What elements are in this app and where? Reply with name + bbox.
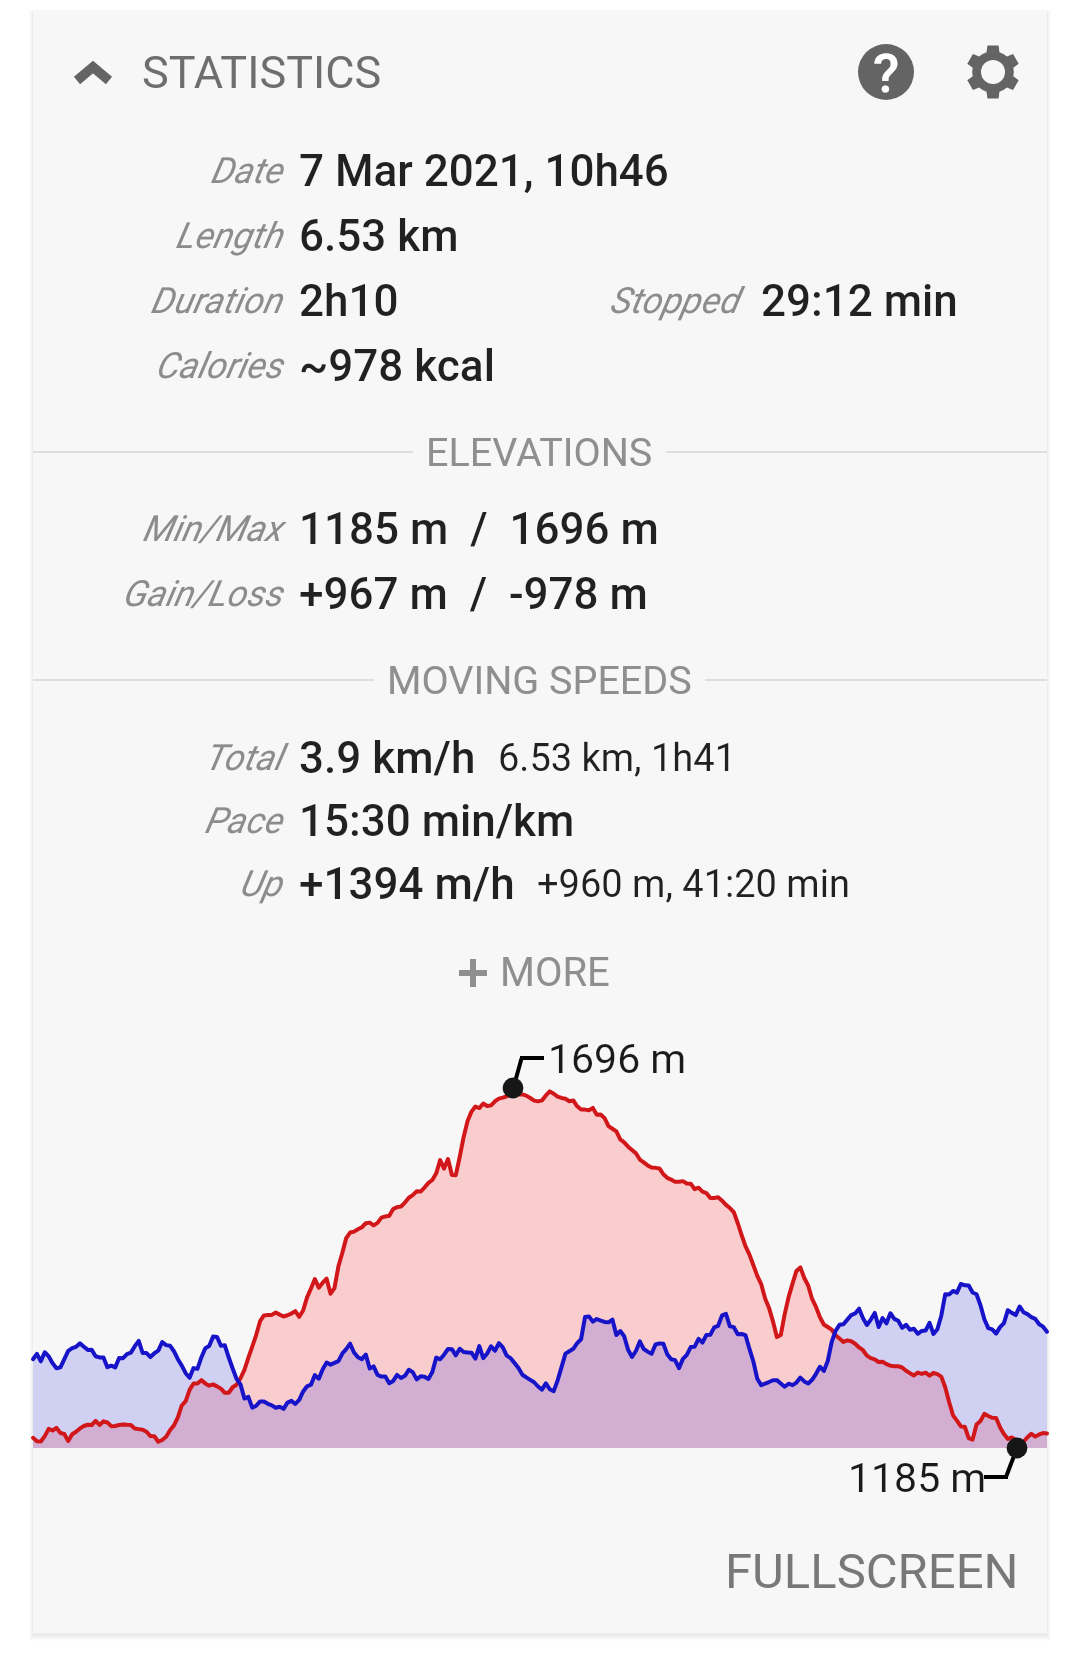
- staticText: MOVING SPEEDS: [387, 657, 692, 703]
- staticText: ?: [873, 42, 900, 98]
- staticText: 1696 m: [548, 1035, 687, 1083]
- button[interactable]: Help: [834, 20, 937, 123]
- staticText: Length: [175, 215, 282, 257]
- staticText: 7 Mar 2021, 10h46: [299, 145, 669, 197]
- staticText: Stopped: [609, 280, 739, 322]
- staticText: Total: [204, 737, 282, 779]
- staticText: 2h10: [299, 275, 399, 327]
- staticText: ~978 kcal: [299, 340, 495, 392]
- staticText: 6.53 km, 1h41: [498, 736, 737, 781]
- staticText: 15:30 min/km: [299, 795, 575, 847]
- staticText: STATISTICS: [142, 46, 382, 99]
- staticText: Duration: [150, 280, 282, 322]
- staticText: 6.53 km: [299, 210, 459, 262]
- staticText: 3.9 km/h: [299, 732, 476, 784]
- staticText: +960 m, 41:20 min: [537, 862, 850, 907]
- staticText: Date: [210, 150, 282, 192]
- staticText: FULLSCREEN: [725, 1543, 1019, 1600]
- staticText: 1185 m / 1696 m: [299, 503, 659, 555]
- staticText: Calories: [155, 345, 282, 387]
- button[interactable]: MORE: [454, 940, 624, 1004]
- staticText: Gain/Loss: [122, 573, 282, 615]
- staticText: Min/Max: [142, 508, 282, 550]
- button[interactable]: FULLSCREEN: [712, 1528, 1032, 1614]
- staticText: ELEVATIONS: [426, 429, 653, 475]
- button[interactable]: Settings: [941, 20, 1044, 123]
- staticText: Up: [239, 863, 282, 905]
- staticText: 29:12 min: [761, 275, 958, 327]
- staticText: +967 m / -978 m: [299, 568, 648, 620]
- staticText: 1185 m: [848, 1454, 987, 1502]
- button[interactable]: STATISTICS: [60, 28, 420, 116]
- staticText: +1394 m/h: [299, 858, 515, 910]
- staticText: MORE: [500, 949, 610, 996]
- staticText: Pace: [204, 800, 282, 842]
